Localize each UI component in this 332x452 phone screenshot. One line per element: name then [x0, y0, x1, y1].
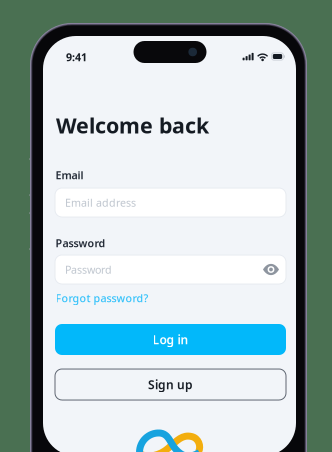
- staticText: Forgot password?: [55, 291, 148, 305]
- staticText: 9:41: [66, 50, 87, 64]
- staticText: Sign up: [148, 376, 193, 392]
- staticText: Password: [65, 262, 112, 277]
- button[interactable]: Log in: [55, 324, 286, 355]
- staticText: Email: [55, 168, 83, 182]
- staticText: Email address: [65, 195, 136, 210]
- staticText: Log in: [152, 331, 188, 347]
- button[interactable]: Forgot password?: [54, 289, 149, 307]
- button[interactable]: Sign up: [55, 369, 286, 400]
- staticText: Welcome back: [56, 111, 209, 139]
- staticText: Password: [55, 236, 105, 250]
